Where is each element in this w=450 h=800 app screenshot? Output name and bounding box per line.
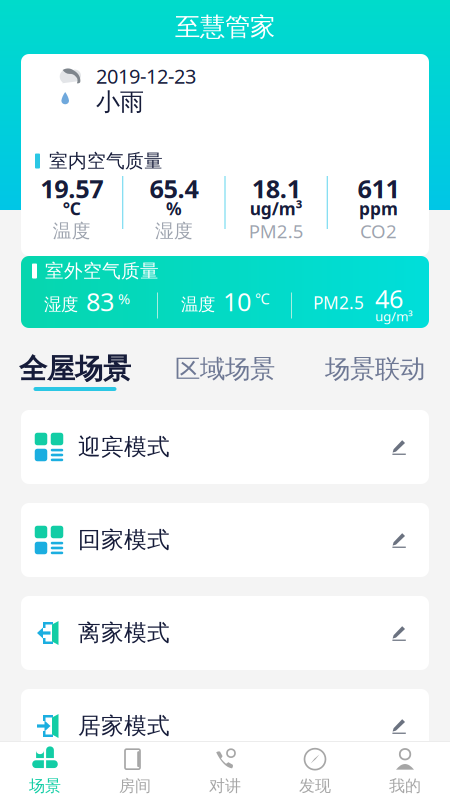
staticText: 2019-12-23 — [96, 63, 196, 89]
button[interactable]: 全屋场景 — [0, 357, 150, 391]
button[interactable]: 居家模式 — [21, 689, 429, 763]
staticText: 离家模式 — [78, 619, 170, 647]
staticText: 场景 — [29, 776, 61, 796]
button[interactable]: 发现 — [270, 742, 360, 800]
button[interactable]: 离家模式 — [21, 596, 429, 670]
button[interactable]: 迎宾模式 — [21, 410, 429, 484]
button[interactable]: 我的 — [360, 742, 450, 800]
staticText: 全屋场景 — [19, 352, 131, 386]
staticText: CO2 — [360, 219, 397, 243]
staticText: 611 — [357, 172, 399, 205]
staticText: PM2.5 — [249, 219, 304, 243]
staticText: 湿度 — [44, 294, 78, 315]
staticText: 83 — [86, 285, 114, 318]
staticText: °C — [63, 197, 81, 220]
staticText: 65.4 — [149, 172, 198, 205]
staticText: % — [166, 197, 182, 220]
button[interactable]: 对讲 — [180, 742, 270, 800]
staticText: ppm — [359, 197, 398, 220]
staticText: 室内空气质量 — [49, 149, 163, 172]
button[interactable]: 回家模式 — [21, 503, 429, 577]
staticText: 回家模式 — [78, 526, 170, 554]
staticText: 18.1 — [252, 172, 301, 205]
staticText: 温度 — [53, 219, 91, 242]
staticText: 区域场景 — [175, 353, 275, 384]
button[interactable]: 区域场景 — [150, 357, 300, 391]
staticText: 至慧管家 — [175, 11, 275, 42]
button[interactable]: 场景 — [0, 742, 90, 800]
staticText: PM2.5 — [313, 291, 364, 314]
staticText: 我的 — [389, 776, 421, 796]
staticText: 居家模式 — [78, 712, 170, 740]
staticText: ug/m³ — [250, 197, 303, 220]
staticText: ℃ — [255, 289, 270, 308]
staticText: 室外空气质量 — [45, 259, 159, 282]
staticText: 对讲 — [209, 776, 241, 796]
staticText: 46 — [375, 282, 403, 315]
staticText: 温度 — [181, 294, 215, 315]
staticText: 小雨 — [96, 87, 144, 117]
staticText: 10 — [223, 285, 251, 318]
staticText: 湿度 — [155, 219, 193, 242]
staticText: ug/m³ — [375, 307, 413, 325]
staticText: % — [118, 289, 130, 308]
button[interactable]: 房间 — [90, 742, 180, 800]
staticText: 19.57 — [40, 172, 103, 205]
staticText: 发现 — [299, 776, 331, 796]
button[interactable]: 场景联动 — [300, 357, 450, 391]
staticText: 场景联动 — [325, 353, 425, 384]
staticText: 迎宾模式 — [78, 433, 170, 461]
staticText: 房间 — [119, 776, 151, 796]
